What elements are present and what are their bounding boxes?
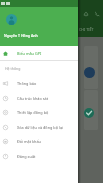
button[interactable]: Biểu mẫu GPI [0, 46, 78, 61]
button[interactable]: Thiết lập đồng bộ [0, 105, 78, 120]
staticText: Biểu mẫu GPI [17, 51, 42, 56]
button[interactable]: Notifications [82, 10, 90, 18]
staticText: Xóa dữ liệu và đồng bộ lại [17, 125, 64, 130]
button[interactable]: Xóa dữ liệu và đồng bộ lại [0, 120, 78, 135]
button[interactable]: Cấu trúc khảo sát [0, 91, 78, 106]
staticText: Cấu trúc khảo sát [17, 96, 49, 101]
button[interactable]: Thông báo [0, 76, 78, 91]
button[interactable]: Call [93, 10, 101, 18]
staticText: Thiết lập đồng bộ [17, 110, 49, 115]
staticText: CHI TIẾT [79, 27, 94, 32]
staticText: Nguyễn T Hồng Anh [4, 33, 38, 38]
button[interactable]: Đổi mật khẩu [0, 134, 78, 149]
staticText: Thông báo [17, 81, 37, 86]
staticText: Đổi mật khẩu [17, 139, 41, 144]
staticText: Đăng xuất [17, 154, 36, 159]
button[interactable]: Done [84, 108, 94, 118]
staticText: Hệ thống [5, 66, 21, 71]
button[interactable]: Edit [84, 67, 95, 78]
button[interactable]: Đăng xuất [0, 149, 78, 164]
